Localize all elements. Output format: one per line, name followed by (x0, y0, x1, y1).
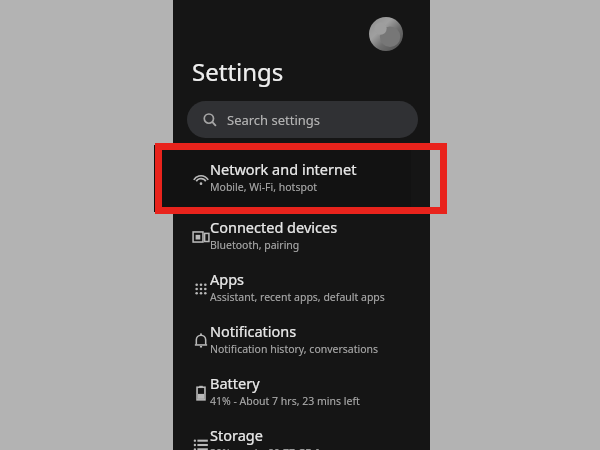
button[interactable]: Apps (173, 263, 430, 315)
staticText: Apps (210, 269, 245, 289)
staticText: Storage (210, 425, 263, 445)
button[interactable]: Notifications (173, 315, 430, 367)
staticText: Battery (210, 373, 260, 393)
button[interactable]: Storage (173, 419, 430, 450)
staticText: 30% used – 89.77 GB free (210, 446, 335, 450)
staticText: Settings (192, 55, 284, 88)
staticText: Mobile, Wi-Fi, hotspot (210, 180, 318, 194)
staticText: Network and internet (210, 159, 357, 179)
button[interactable]: Account avatar (369, 17, 403, 51)
staticText: Connected devices (210, 217, 338, 237)
staticText: Bluetooth, pairing (210, 238, 300, 252)
staticText: Notification history, conversations (210, 342, 379, 356)
button[interactable]: Network and internet (154, 145, 411, 212)
staticText: Assistant, recent apps, default apps (210, 290, 385, 304)
staticText: Notifications (210, 321, 297, 341)
button[interactable]: Search settings (187, 101, 418, 138)
staticText: 41% - About 7 hrs, 23 mins left (210, 394, 360, 408)
button[interactable]: Connected devices (173, 211, 430, 263)
button[interactable]: Battery (173, 367, 430, 419)
staticText: Search settings (227, 111, 321, 129)
